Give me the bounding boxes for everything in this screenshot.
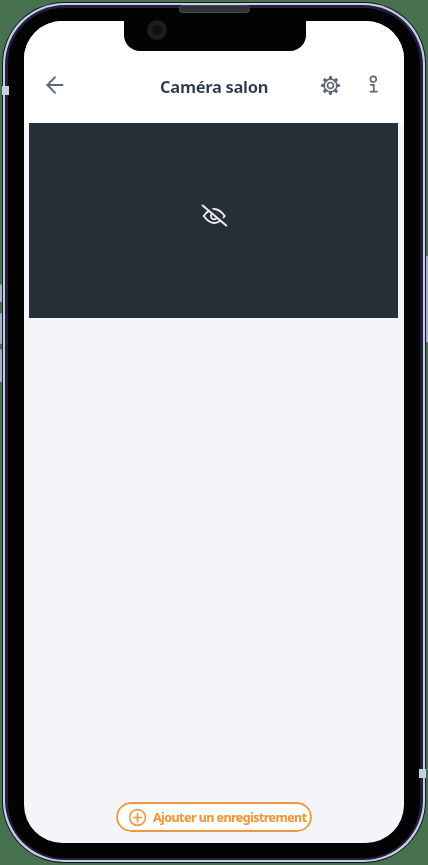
staticText: Ajouter un enregistrement bbox=[153, 809, 307, 826]
button[interactable] bbox=[40, 70, 70, 100]
staticText: Caméra salon bbox=[160, 75, 269, 97]
button[interactable]: Ajouter un enregistrement bbox=[116, 802, 312, 832]
button[interactable] bbox=[361, 71, 386, 96]
button[interactable] bbox=[316, 71, 345, 100]
